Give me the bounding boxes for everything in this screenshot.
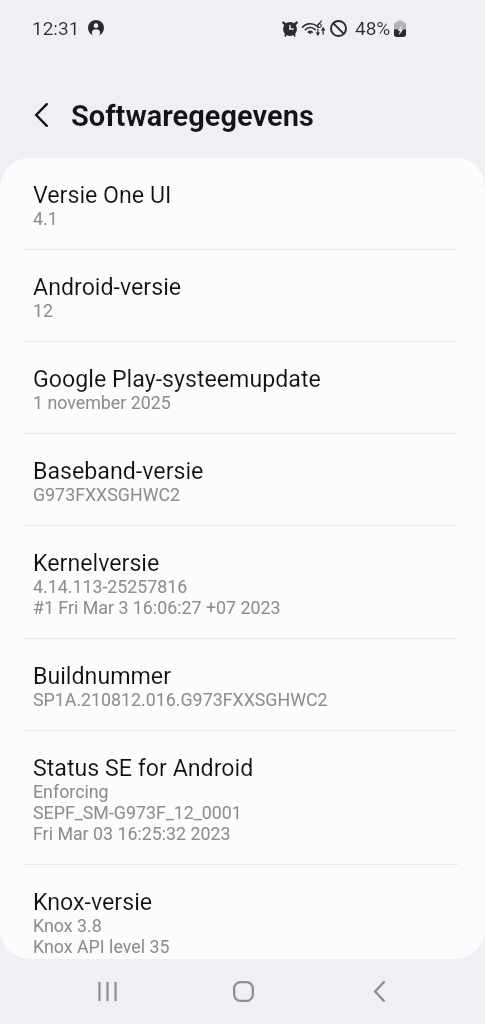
button[interactable]: Versie One UI [0, 158, 485, 250]
staticText: Buildnummer [33, 662, 171, 689]
button[interactable]: Home [198, 959, 288, 1024]
button[interactable]: Status SE for Android [0, 731, 485, 865]
staticText: Google Play-systeemupdate [33, 365, 321, 392]
button[interactable]: Back [334, 959, 424, 1024]
staticText: Enforcing [33, 781, 109, 802]
staticText: Android-versie [33, 273, 182, 300]
staticText: Kernelversie [33, 549, 160, 576]
button[interactable]: Baseband-versie [0, 434, 485, 526]
button[interactable]: Knox-versie [0, 865, 485, 959]
staticText: SP1A.210812.016.G973FXXSGHWC2 [33, 689, 328, 710]
staticText: 1 november 2025 [33, 392, 171, 413]
button[interactable]: Recent apps [62, 959, 152, 1024]
staticText: 12:31 [32, 17, 80, 39]
staticText: Status SE for Android [33, 754, 254, 781]
staticText: #1 Fri Mar 3 16:06:27 +07 2023 [33, 597, 281, 618]
staticText: 12 [33, 300, 54, 321]
button[interactable]: Android-versie [0, 250, 485, 342]
staticText: Knox API level 35 [33, 936, 170, 957]
staticText: 4.14.113-25257816 [33, 576, 188, 597]
staticText: G973FXXSGHWC2 [33, 484, 181, 505]
staticText: Knox-versie [33, 888, 153, 915]
staticText: SEPF_SM-G973F_12_0001 [33, 802, 242, 823]
staticText: Versie One UI [33, 181, 172, 208]
button[interactable]: Google Play-systeemupdate [0, 342, 485, 434]
button[interactable]: Buildnummer [0, 639, 485, 731]
staticText: 48% [355, 17, 391, 39]
staticText: 4.1 [33, 208, 58, 229]
staticText: Knox 3.8 [33, 915, 102, 936]
button[interactable]: Back [12, 86, 70, 144]
staticText: Softwaregegevens [71, 99, 314, 133]
staticText: Fri Mar 03 16:25:32 2023 [33, 823, 231, 844]
button[interactable]: Kernelversie [0, 526, 485, 639]
staticText: Baseband-versie [33, 457, 204, 484]
